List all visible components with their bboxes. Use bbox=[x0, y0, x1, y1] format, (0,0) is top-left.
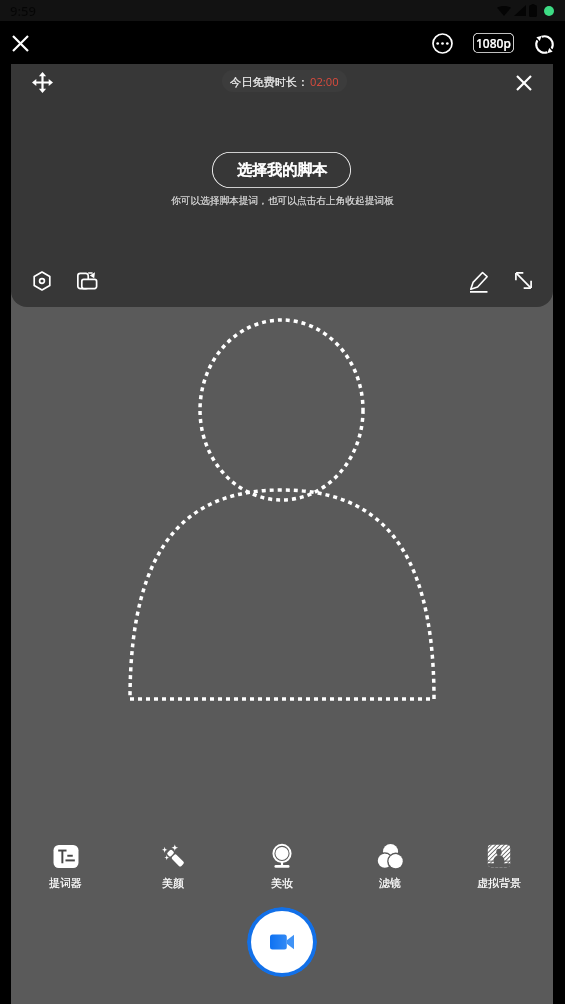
staticText: 美颜 bbox=[162, 876, 184, 890]
button[interactable]: More options bbox=[425, 26, 460, 61]
button[interactable]: Close teleprompter bbox=[509, 68, 538, 97]
staticText: 美妆 bbox=[271, 876, 293, 890]
staticText: 9:59 bbox=[10, 2, 36, 20]
button[interactable]: Import script bbox=[72, 266, 101, 295]
button[interactable]: 滤镜 bbox=[366, 843, 414, 905]
button[interactable]: Edit script bbox=[465, 266, 494, 295]
button[interactable]: 提词器 bbox=[35, 843, 95, 905]
button[interactable]: 1080p bbox=[473, 33, 514, 53]
staticText: 选择我的脚本 bbox=[237, 161, 327, 180]
button[interactable]: Move teleprompter bbox=[28, 68, 57, 97]
button[interactable]: Close bbox=[2, 25, 39, 62]
staticText: 虚拟背景 bbox=[477, 876, 521, 890]
button[interactable]: 虚拟背景 bbox=[464, 843, 534, 905]
button[interactable]: Teleprompter settings bbox=[27, 266, 56, 295]
button[interactable]: Record bbox=[247, 907, 317, 977]
button[interactable]: Switch camera bbox=[527, 27, 561, 61]
staticText: 滤镜 bbox=[379, 876, 401, 890]
staticText: 今日免费时长： bbox=[230, 75, 309, 89]
button[interactable]: 选择我的脚本 bbox=[212, 152, 351, 188]
staticText: 你可以选择脚本提词，也可以点击右上角收起提词板 bbox=[171, 195, 394, 207]
staticText: 提词器 bbox=[49, 876, 82, 890]
button[interactable]: Resize teleprompter bbox=[509, 266, 538, 295]
button[interactable]: 美颜 bbox=[149, 843, 197, 905]
staticText: 02:00 bbox=[310, 74, 339, 89]
staticText: 1080p bbox=[476, 35, 511, 51]
button[interactable]: 美妆 bbox=[258, 843, 306, 905]
